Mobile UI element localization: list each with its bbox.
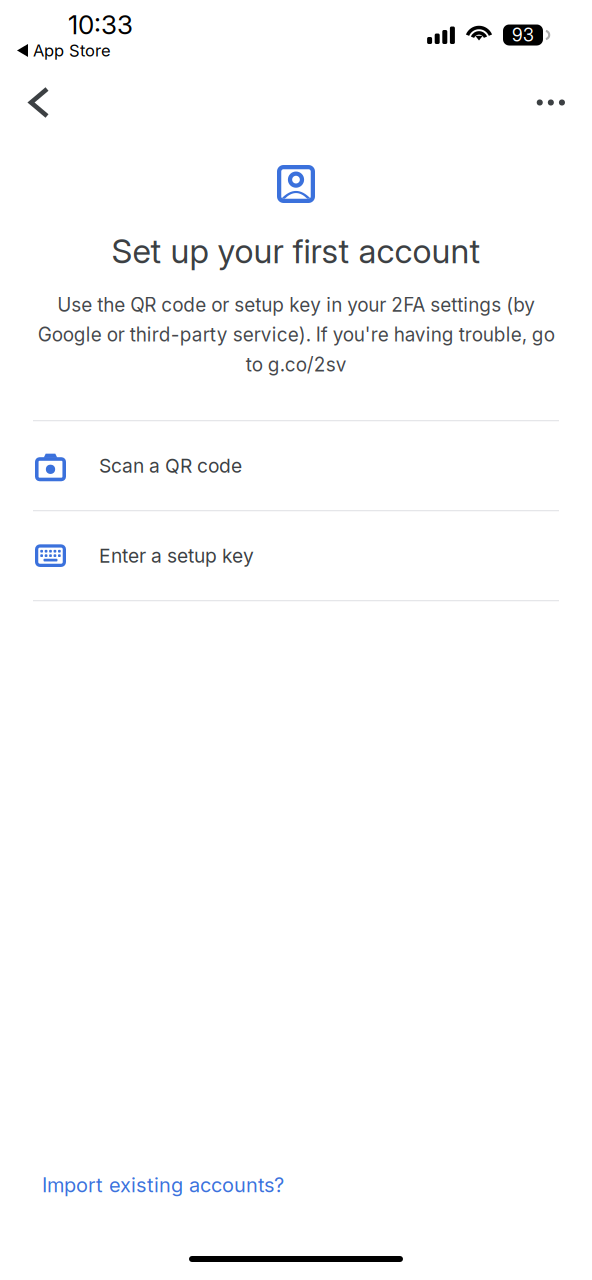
staticText: Scan a QR code [99, 454, 242, 477]
button[interactable]: Back [0, 68, 68, 125]
staticText: 10:33 [68, 9, 133, 40]
button[interactable]: Scan a QR code [33, 421, 559, 510]
button[interactable]: Enter a setup key [33, 511, 559, 600]
staticText: Enter a setup key [99, 544, 254, 567]
staticText: Use the QR code or setup key in your 2FA… [37, 293, 554, 376]
staticText: Set up your first account [111, 231, 480, 271]
staticText: App Store [33, 40, 111, 60]
button[interactable]: Import existing accounts? [0, 1164, 592, 1206]
staticText: 93 [512, 24, 534, 46]
staticText: Import existing accounts? [42, 1173, 284, 1197]
button[interactable]: More options [517, 68, 592, 125]
